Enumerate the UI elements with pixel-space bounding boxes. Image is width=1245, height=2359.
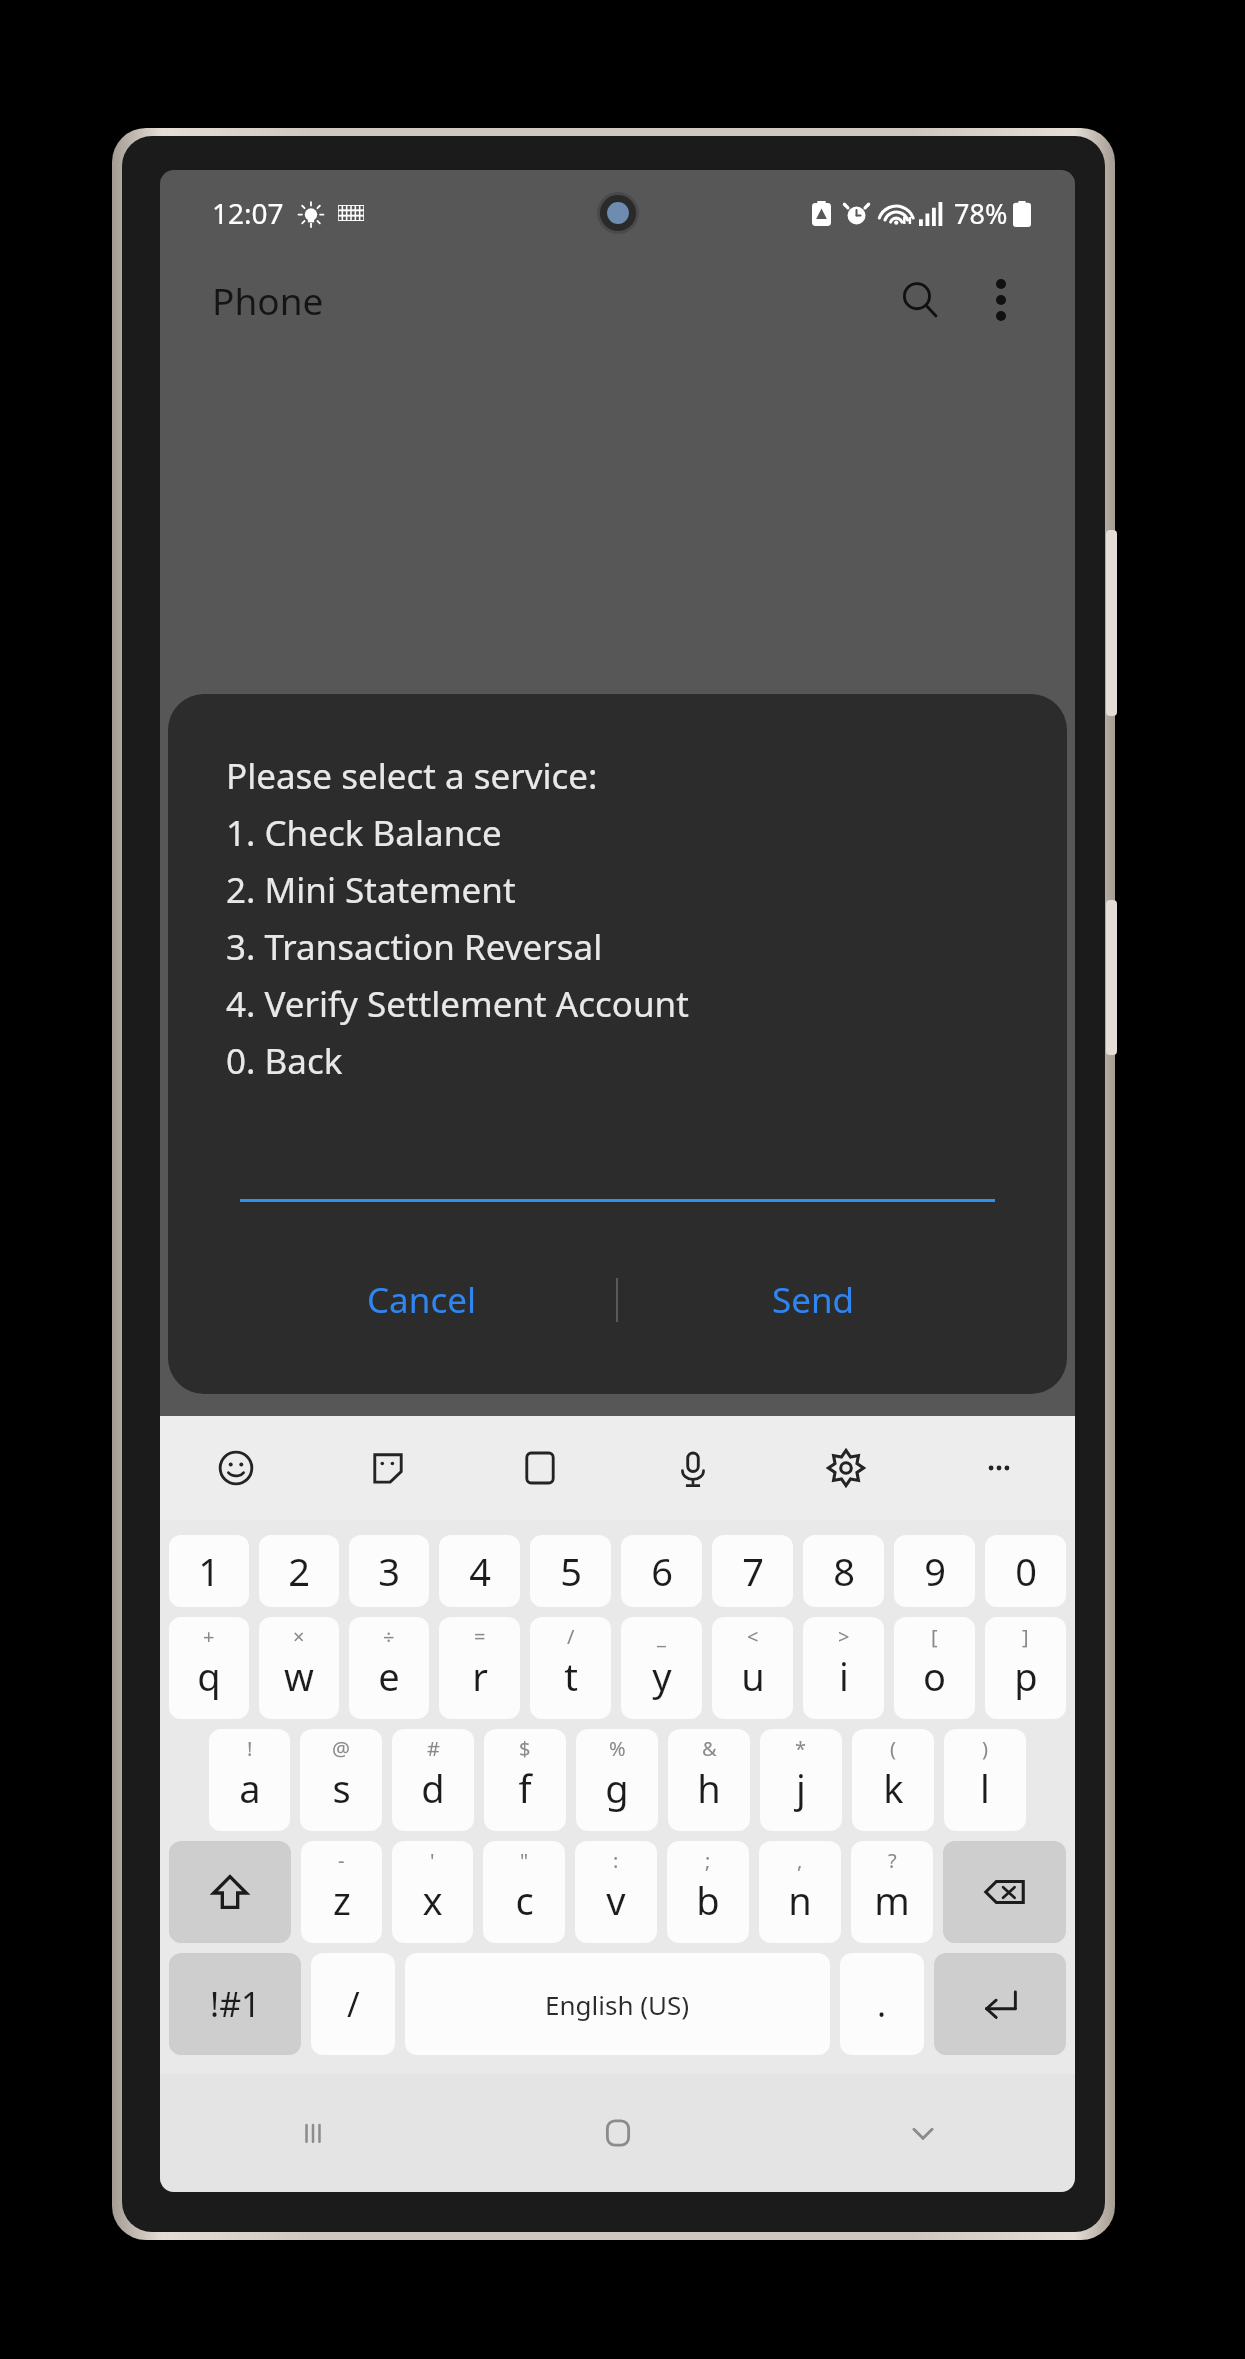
staticText: j <box>796 1762 806 1814</box>
button[interactable]: ; <box>667 1841 749 1943</box>
button[interactable]: [ <box>894 1617 975 1719</box>
button[interactable]: 9 <box>894 1535 975 1607</box>
button[interactable]: - <box>301 1841 382 1943</box>
button[interactable]: ] <box>985 1617 1066 1719</box>
staticText: / <box>347 1981 360 2027</box>
button[interactable]: ÷ <box>349 1617 429 1719</box>
button[interactable]: , <box>759 1841 841 1943</box>
button[interactable]: % <box>576 1729 658 1831</box>
staticText: 9 <box>924 1545 946 1597</box>
staticText: 4 <box>469 1545 491 1597</box>
button[interactable]: ' <box>392 1841 473 1943</box>
button[interactable]: # <box>392 1729 474 1831</box>
staticText: 12:07 <box>212 194 284 232</box>
staticText: 7 <box>742 1545 764 1597</box>
button[interactable]: : <box>575 1841 657 1943</box>
staticText: [ <box>931 1623 938 1650</box>
staticText: 6 <box>651 1545 673 1597</box>
staticText: & <box>702 1735 717 1762</box>
staticText: ( <box>890 1735 896 1762</box>
staticText: 2 <box>288 1545 310 1597</box>
staticText: Phone <box>212 275 324 325</box>
button[interactable]: " <box>483 1841 565 1943</box>
button[interactable]: / <box>530 1617 611 1719</box>
staticText: _ <box>657 1623 666 1650</box>
staticText: : <box>613 1847 619 1874</box>
staticText: 3 <box>378 1545 400 1597</box>
button[interactable]: ! <box>209 1729 290 1831</box>
staticText: - <box>338 1847 345 1874</box>
staticText: . <box>877 1981 887 2027</box>
button[interactable]: Hide keyboard <box>770 2074 1075 2192</box>
button[interactable]: 3 <box>349 1535 429 1607</box>
staticText: ' <box>430 1847 435 1874</box>
staticText: Cancel <box>367 1276 476 1324</box>
staticText: @ <box>332 1735 350 1762</box>
staticText: , <box>797 1847 803 1874</box>
staticText: 78% <box>954 195 1008 232</box>
button[interactable]: * <box>760 1729 842 1831</box>
staticText: ! <box>247 1735 253 1762</box>
staticText: Send <box>772 1276 855 1324</box>
staticText: > <box>838 1623 850 1650</box>
button[interactable]: Stickers <box>312 1416 464 1520</box>
button[interactable]: 4 <box>439 1535 520 1607</box>
button[interactable]: ? <box>851 1841 933 1943</box>
button[interactable]: = <box>439 1617 520 1719</box>
button[interactable]: Cancel <box>226 1254 616 1346</box>
button[interactable]: Emoji <box>160 1416 312 1520</box>
staticText: x <box>422 1874 443 1926</box>
staticText: # <box>427 1735 440 1762</box>
button[interactable]: GIF <box>464 1416 616 1520</box>
button[interactable]: More <box>922 1416 1075 1520</box>
staticText: p <box>1014 1650 1038 1702</box>
staticText: 0 <box>1015 1545 1037 1597</box>
staticText: 5 <box>560 1545 582 1597</box>
staticText: < <box>747 1623 759 1650</box>
button[interactable]: More options <box>967 266 1035 334</box>
button[interactable]: . <box>840 1953 924 2055</box>
button[interactable]: @ <box>300 1729 382 1831</box>
button[interactable]: + <box>169 1617 249 1719</box>
button[interactable]: 7 <box>712 1535 793 1607</box>
button[interactable]: !#1 <box>169 1953 301 2055</box>
staticText: i <box>839 1650 849 1702</box>
button[interactable]: Settings <box>769 1416 922 1520</box>
button[interactable]: 0 <box>985 1535 1066 1607</box>
staticText: b <box>696 1874 720 1926</box>
staticText: u <box>741 1650 765 1702</box>
button[interactable]: < <box>712 1617 793 1719</box>
button[interactable]: ) <box>944 1729 1026 1831</box>
button[interactable]: / <box>311 1953 395 2055</box>
button[interactable]: 6 <box>621 1535 702 1607</box>
staticText: q <box>197 1650 221 1702</box>
staticText: !#1 <box>210 1981 261 2027</box>
staticText: * <box>795 1735 807 1762</box>
button[interactable]: English (US) <box>405 1953 830 2055</box>
button[interactable]: ( <box>852 1729 934 1831</box>
button[interactable]: 8 <box>803 1535 884 1607</box>
button[interactable]: Backspace <box>943 1841 1066 1943</box>
staticText: f <box>518 1762 532 1814</box>
button[interactable]: Voice input <box>616 1416 769 1520</box>
staticText: 2. Mini Statement <box>226 866 516 914</box>
button[interactable]: 2 <box>259 1535 339 1607</box>
button[interactable]: Home <box>465 2074 770 2192</box>
button[interactable]: > <box>803 1617 884 1719</box>
button[interactable]: _ <box>621 1617 702 1719</box>
button[interactable]: Recents <box>160 2074 465 2192</box>
button[interactable]: $ <box>484 1729 566 1831</box>
button[interactable]: 5 <box>530 1535 611 1607</box>
button[interactable]: & <box>668 1729 750 1831</box>
button[interactable]: Search <box>883 263 957 337</box>
button[interactable]: Shift <box>169 1841 291 1943</box>
staticText: % <box>609 1735 626 1762</box>
staticText: w <box>284 1650 314 1702</box>
staticText: s <box>332 1762 351 1814</box>
staticText: ; <box>705 1847 711 1874</box>
staticText: k <box>883 1762 904 1814</box>
button[interactable]: 1 <box>169 1535 249 1607</box>
button[interactable]: Send <box>618 1254 1009 1346</box>
button[interactable]: Enter <box>934 1953 1066 2055</box>
button[interactable]: × <box>259 1617 339 1719</box>
